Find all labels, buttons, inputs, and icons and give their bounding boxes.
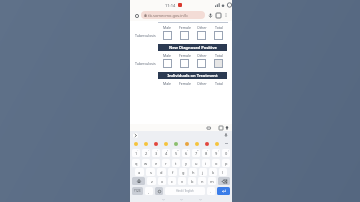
button[interactable]: 9 — [212, 149, 220, 157]
button[interactable]: , — [145, 187, 153, 195]
staticText: Male — [163, 81, 172, 86]
button[interactable]: 6 — [182, 149, 190, 157]
button[interactable]: More emoji — [224, 141, 229, 146]
button[interactable]: Voice input — [223, 132, 229, 138]
staticText: 0 — [225, 151, 228, 156]
staticText: 5 — [175, 151, 178, 156]
button[interactable]: v — [178, 177, 186, 185]
button[interactable] — [180, 31, 189, 40]
staticText: f — [172, 170, 174, 175]
button[interactable]: 3 — [152, 149, 160, 157]
staticText: 3 — [155, 151, 158, 156]
staticText: b — [191, 179, 194, 184]
button[interactable]: Emoji — [184, 141, 189, 146]
button[interactable]: g — [179, 168, 187, 176]
button[interactable] — [214, 31, 223, 40]
staticText: i — [205, 161, 207, 166]
button[interactable]: Hindi / English — [165, 187, 205, 195]
button[interactable]: Home — [133, 12, 140, 19]
button[interactable]: Emoji — [153, 141, 158, 146]
button[interactable]: k — [209, 168, 217, 176]
button[interactable]: q — [132, 159, 140, 167]
button[interactable]: j — [199, 168, 207, 176]
staticText: 11:14 — [165, 3, 176, 8]
button[interactable]: l — [219, 168, 227, 176]
staticText: Tuberculosis — [135, 61, 156, 66]
staticText: c — [171, 179, 173, 184]
staticText: ^ — [187, 149, 189, 152]
staticText: | — [157, 149, 159, 152]
staticText: Tuberculosis — [135, 33, 156, 38]
staticText: t — [175, 161, 177, 166]
button[interactable]: More options — [223, 12, 229, 18]
button[interactable]: Emoji — [163, 141, 168, 146]
button[interactable]: a — [135, 168, 144, 176]
staticText: 4 — [165, 151, 168, 156]
button[interactable]: y — [182, 159, 190, 167]
button[interactable]: p — [222, 159, 230, 167]
button[interactable]: z — [147, 177, 156, 185]
button[interactable]: 5 — [172, 149, 180, 157]
button[interactable]: n — [198, 177, 206, 185]
staticText: h — [192, 170, 195, 175]
button[interactable]: 4 — [162, 149, 170, 157]
button[interactable]: Enter — [217, 187, 230, 195]
button[interactable]: tb.somecmo.gov.in/b — [141, 11, 205, 19]
staticText: a — [138, 170, 141, 175]
button[interactable]: Voice search — [207, 12, 214, 19]
button[interactable]: Individuals on Treatment — [158, 72, 227, 79]
button[interactable]: Emoji — [155, 187, 163, 195]
button[interactable]: Emoji — [173, 141, 178, 146]
button[interactable] — [180, 59, 189, 68]
button[interactable]: c — [168, 177, 176, 185]
staticText: Total — [215, 25, 223, 30]
button[interactable]: u — [192, 159, 200, 167]
staticText: q — [135, 161, 138, 166]
button[interactable]: i — [202, 159, 210, 167]
button[interactable]: r — [162, 159, 170, 167]
button[interactable]: Backspace — [218, 177, 230, 185]
button[interactable]: . — [207, 187, 215, 195]
button[interactable]: Emoji — [194, 141, 199, 146]
button[interactable] — [163, 59, 172, 68]
button[interactable]: e — [152, 159, 160, 167]
button[interactable] — [163, 31, 172, 40]
button[interactable]: Emoji — [143, 141, 148, 146]
button[interactable]: 7 — [192, 149, 200, 157]
button[interactable]: t — [172, 159, 180, 167]
button[interactable]: o — [212, 159, 220, 167]
button[interactable]: m — [208, 177, 216, 185]
button[interactable]: 8 — [202, 149, 210, 157]
staticText: u — [195, 161, 198, 166]
button[interactable]: b — [188, 177, 196, 185]
staticText: Total — [215, 53, 223, 58]
button[interactable] — [214, 59, 223, 68]
staticText: 7 — [195, 151, 198, 156]
button[interactable]: w — [142, 159, 150, 167]
staticText: g — [182, 170, 185, 175]
button[interactable]: New Diagnosed Positive — [158, 44, 227, 51]
button[interactable]: x — [158, 177, 166, 185]
staticText: k — [212, 170, 215, 175]
button[interactable]: s — [146, 168, 155, 176]
button[interactable]: 0 — [222, 149, 230, 157]
button[interactable] — [197, 59, 206, 68]
button[interactable]: Emoji — [204, 141, 209, 146]
button[interactable] — [197, 31, 206, 40]
button[interactable]: Emoji — [214, 141, 219, 146]
staticText: z — [151, 179, 153, 184]
button[interactable]: 1 — [132, 149, 140, 157]
button[interactable]: 2 — [142, 149, 150, 157]
button[interactable]: h — [189, 168, 197, 176]
button[interactable]: Shift — [132, 177, 145, 185]
button[interactable]: f — [168, 168, 177, 176]
staticText: Female — [179, 25, 191, 30]
button[interactable]: d — [157, 168, 166, 176]
button[interactable]: Expand toolbar — [133, 133, 138, 138]
staticText: 6 — [185, 151, 188, 156]
button[interactable]: Symbols — [132, 187, 143, 195]
button[interactable]: Emoji — [133, 141, 138, 146]
staticText: r — [165, 161, 167, 166]
button[interactable]: Tabs — [215, 12, 222, 19]
staticText: s — [150, 170, 152, 175]
